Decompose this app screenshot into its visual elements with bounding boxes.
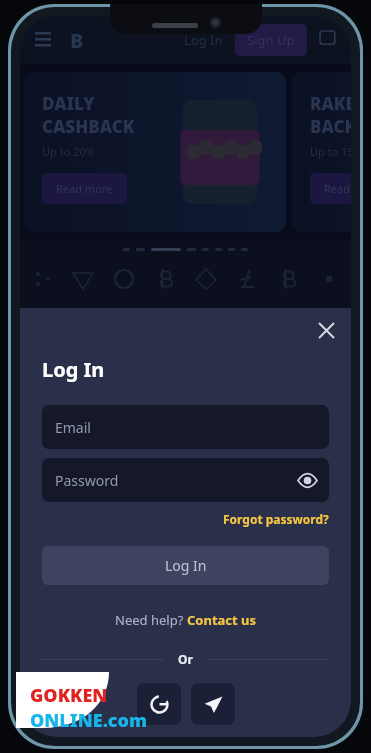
- staticText: Or: [178, 651, 193, 667]
- staticText: CASHBACK: [42, 115, 135, 138]
- button[interactable]: Menu: [30, 27, 56, 53]
- button[interactable]: Chat: [317, 28, 341, 52]
- staticText: Read more: [56, 181, 113, 196]
- staticText: Contact us: [187, 611, 257, 629]
- staticText: Up to 15%: [310, 144, 351, 159]
- staticText: Read more: [324, 181, 351, 196]
- staticText: Forgot password?: [223, 511, 329, 527]
- staticText: Log In: [165, 556, 207, 575]
- staticText: RAKE: [310, 92, 351, 115]
- button[interactable]: Telegram: [191, 683, 235, 725]
- button[interactable]: Google: [137, 683, 181, 725]
- button[interactable]: RAKE: [292, 72, 351, 232]
- button[interactable]: Close: [309, 313, 343, 347]
- staticText: Up to 20%: [42, 144, 95, 159]
- staticText: Email: [55, 418, 91, 437]
- staticText: Password: [55, 471, 119, 490]
- button[interactable]: Sign Up: [235, 24, 307, 56]
- staticText: GOKKEN: [30, 683, 108, 708]
- staticText: ONLINE.com: [30, 708, 148, 733]
- staticText: B: [70, 27, 84, 54]
- staticText: Log In: [184, 31, 223, 49]
- button[interactable]: Log In: [176, 25, 231, 55]
- button[interactable]: Contact us: [187, 611, 257, 629]
- button[interactable]: Log In: [42, 546, 329, 585]
- staticText: Sign Up: [247, 31, 295, 49]
- button[interactable]: Show password: [293, 466, 321, 494]
- button[interactable]: Read more: [310, 173, 351, 204]
- button[interactable]: Email: [42, 405, 329, 449]
- button[interactable]: DAILY: [24, 72, 286, 232]
- staticText: Log In: [42, 356, 105, 383]
- button[interactable]: Read more: [42, 173, 127, 204]
- staticText: Need help?: [115, 611, 187, 629]
- button[interactable]: Password: [42, 458, 329, 502]
- staticText: BACK: [310, 115, 351, 138]
- button[interactable]: Forgot password?: [223, 511, 329, 527]
- staticText: DAILY: [42, 92, 95, 115]
